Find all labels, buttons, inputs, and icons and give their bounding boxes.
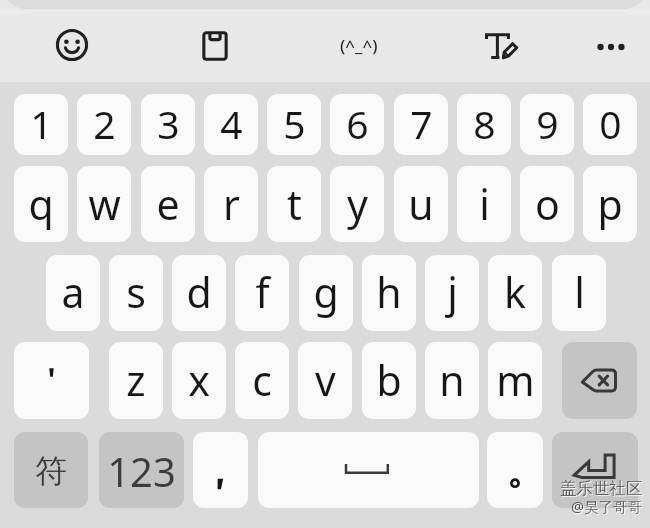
button[interactable]: 9 bbox=[520, 94, 574, 155]
staticText: q bbox=[28, 176, 54, 232]
staticText: t bbox=[287, 176, 302, 232]
staticText: f bbox=[255, 264, 270, 320]
staticText: x bbox=[188, 352, 210, 408]
button[interactable]: Comma bbox=[193, 432, 248, 508]
button[interactable]: Period bbox=[487, 432, 543, 508]
button[interactable]: d bbox=[172, 255, 226, 331]
button[interactable]: r bbox=[204, 166, 258, 242]
button[interactable]: v bbox=[298, 342, 352, 419]
staticText: 2 bbox=[93, 97, 116, 150]
button[interactable]: l bbox=[552, 255, 606, 331]
button[interactable]: x bbox=[172, 342, 226, 419]
button[interactable]: b bbox=[362, 342, 416, 419]
button[interactable]: Enter bbox=[552, 432, 638, 508]
staticText: c bbox=[252, 352, 272, 408]
staticText: 符 bbox=[35, 451, 67, 491]
staticText: 7 bbox=[410, 97, 433, 150]
button[interactable]: Backspace bbox=[562, 342, 637, 419]
staticText: b bbox=[376, 352, 402, 408]
button[interactable]: k bbox=[488, 255, 542, 331]
button[interactable]: t bbox=[267, 166, 321, 242]
button[interactable]: j bbox=[425, 255, 479, 331]
staticText: w bbox=[88, 176, 121, 232]
staticText: 5 bbox=[283, 97, 306, 150]
staticText: i bbox=[479, 176, 490, 232]
button[interactable]: m bbox=[488, 342, 542, 419]
button[interactable]: 7 bbox=[394, 94, 448, 155]
button[interactable]: 0 bbox=[583, 94, 637, 155]
staticText: 6 bbox=[346, 97, 369, 150]
staticText: 123 bbox=[107, 444, 176, 498]
button[interactable]: Emoji bbox=[42, 15, 102, 75]
button[interactable]: i bbox=[457, 166, 511, 242]
staticText: 9 bbox=[536, 97, 559, 150]
staticText: 0 bbox=[599, 97, 622, 150]
staticText: 盖乐世社区 bbox=[560, 478, 643, 499]
button[interactable]: q bbox=[14, 166, 68, 242]
button[interactable]: y bbox=[330, 166, 384, 242]
staticText: 盖乐世社区 bbox=[561, 479, 644, 500]
button[interactable]: Handwriting bbox=[472, 18, 532, 78]
button[interactable]: n bbox=[425, 342, 479, 419]
button[interactable]: Apostrophe bbox=[14, 342, 89, 419]
button[interactable]: w bbox=[77, 166, 131, 242]
staticText: u bbox=[408, 176, 434, 232]
button[interactable]: a bbox=[46, 255, 100, 331]
staticText: (^_^) bbox=[340, 34, 378, 57]
button[interactable]: Clipboard bbox=[185, 16, 245, 76]
staticText: y bbox=[347, 176, 368, 232]
button[interactable]: h bbox=[362, 255, 416, 331]
button[interactable]: e bbox=[141, 166, 195, 242]
staticText: d bbox=[186, 264, 212, 320]
button[interactable]: c bbox=[235, 342, 289, 419]
button[interactable]: 符 bbox=[14, 432, 88, 508]
staticText: 4 bbox=[220, 97, 243, 150]
button[interactable]: 1 bbox=[14, 94, 68, 155]
staticText: @昊了哥哥 bbox=[571, 496, 643, 516]
staticText: m bbox=[496, 352, 535, 408]
button[interactable]: o bbox=[520, 166, 574, 242]
button[interactable]: 4 bbox=[204, 94, 258, 155]
button[interactable]: 3 bbox=[141, 94, 195, 155]
button[interactable]: 6 bbox=[330, 94, 384, 155]
button[interactable]: f bbox=[235, 255, 289, 331]
button[interactable]: g bbox=[299, 255, 353, 331]
button[interactable]: 123 bbox=[99, 432, 184, 508]
button[interactable]: p bbox=[583, 166, 637, 242]
staticText: l bbox=[574, 264, 585, 320]
staticText: s bbox=[126, 264, 146, 320]
staticText: v bbox=[315, 352, 336, 408]
button[interactable]: z bbox=[109, 342, 163, 419]
staticText: h bbox=[376, 264, 402, 320]
button[interactable]: 5 bbox=[267, 94, 321, 155]
staticText: g bbox=[313, 264, 339, 320]
button[interactable]: s bbox=[109, 255, 163, 331]
staticText: p bbox=[597, 176, 623, 232]
staticText: z bbox=[126, 352, 146, 408]
button[interactable]: u bbox=[394, 166, 448, 242]
button[interactable]: 2 bbox=[77, 94, 131, 155]
staticText: e bbox=[156, 176, 180, 232]
staticText: 8 bbox=[473, 97, 496, 150]
button[interactable]: 8 bbox=[457, 94, 511, 155]
button[interactable]: Space bbox=[258, 432, 479, 508]
staticText: 1 bbox=[30, 97, 53, 150]
staticText: k bbox=[504, 264, 526, 320]
staticText: o bbox=[535, 176, 560, 232]
staticText: n bbox=[439, 352, 465, 408]
staticText: j bbox=[447, 264, 458, 320]
staticText: 3 bbox=[157, 97, 180, 150]
staticText: @昊了哥哥 bbox=[572, 497, 644, 517]
button[interactable]: (^_^) bbox=[318, 22, 400, 68]
staticText: a bbox=[61, 264, 85, 320]
button[interactable]: More options bbox=[581, 17, 641, 77]
staticText: r bbox=[223, 176, 240, 232]
